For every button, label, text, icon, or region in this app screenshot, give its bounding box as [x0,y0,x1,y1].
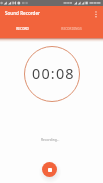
staticText: Sound Recorder [5,10,41,16]
staticText: Recording... [41,137,60,141]
button[interactable]: Stop recording [42,162,57,177]
button[interactable]: More options [90,9,101,20]
staticText: 00:08 [32,64,75,84]
staticText: RECORDINGS [61,27,82,31]
button[interactable]: RECORD [0,21,51,37]
button[interactable]: RECORDINGS [51,21,103,37]
staticText: RECORD [16,27,29,31]
